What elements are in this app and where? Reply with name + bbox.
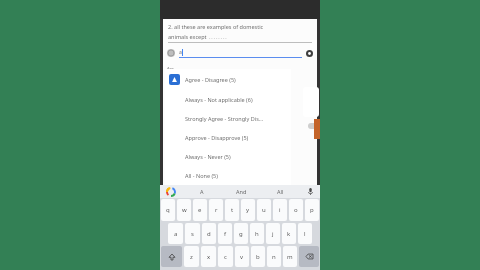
button[interactable]: Agree - Disagree (5) <box>165 69 291 89</box>
staticText: v <box>240 253 244 261</box>
button[interactable]: Approve - Disapprove (5) <box>165 128 291 147</box>
staticText: A <box>200 188 204 195</box>
button[interactable]: Option <box>167 80 174 87</box>
staticText: All - None (5) <box>185 172 218 179</box>
staticText: animals except <box>168 33 207 40</box>
button[interactable]: v <box>235 246 249 267</box>
staticText: f <box>224 230 227 238</box>
staticText: Agree - Disagree (5) <box>185 76 236 83</box>
staticText: Always - Never (5) <box>185 153 231 160</box>
button[interactable]: l <box>298 223 312 244</box>
staticText: o <box>294 206 298 214</box>
staticText: w <box>182 206 187 214</box>
staticText: n <box>272 253 276 261</box>
button[interactable]: Strongly Agree - Strongly Dis... <box>165 109 291 128</box>
button[interactable]: z <box>184 246 199 267</box>
button[interactable]: e <box>193 199 207 221</box>
staticText: 2. all these are examples of domestic <box>168 23 264 30</box>
button[interactable]: f <box>218 223 232 244</box>
staticText: c <box>224 253 227 261</box>
staticText: Approve - Disapprove (5) <box>185 134 249 141</box>
button[interactable]: Clear <box>306 50 313 57</box>
button[interactable]: All - None (5) <box>165 166 291 185</box>
staticText: p <box>310 206 314 214</box>
button[interactable]: p <box>305 199 319 221</box>
button[interactable]: o <box>289 199 303 221</box>
staticText: t <box>231 206 234 214</box>
staticText: e <box>198 206 202 214</box>
button[interactable]: w <box>177 199 191 221</box>
button[interactable]: Always - Not applicable (6) <box>165 89 291 109</box>
staticText: h <box>255 230 259 238</box>
button[interactable]: j <box>266 223 280 244</box>
button[interactable]: k <box>282 223 296 244</box>
staticText: j <box>272 230 274 238</box>
staticText: m <box>287 253 293 261</box>
button[interactable]: h <box>250 223 264 244</box>
button[interactable]: u <box>257 199 271 221</box>
staticText: - - - - - - - - <box>209 35 227 40</box>
button[interactable]: m <box>283 246 297 267</box>
button[interactable]: q <box>161 199 175 221</box>
staticText: d <box>207 230 211 238</box>
button[interactable]: Voice input <box>300 185 320 198</box>
button[interactable]: g <box>234 223 248 244</box>
button[interactable]: c <box>218 246 233 267</box>
button[interactable]: d <box>202 223 216 244</box>
staticText: y <box>246 206 250 214</box>
button[interactable]: Search <box>167 46 313 60</box>
button[interactable]: A <box>182 185 222 198</box>
button[interactable]: n <box>267 246 281 267</box>
staticText: Ans <box>167 66 174 71</box>
staticText: s <box>191 230 194 238</box>
staticText: b <box>256 253 260 261</box>
staticText: a <box>179 49 182 56</box>
staticText: k <box>287 230 291 238</box>
button[interactable]: Google <box>160 185 182 198</box>
staticText: u <box>262 206 266 214</box>
button[interactable]: b <box>251 246 265 267</box>
staticText: x <box>207 253 211 261</box>
staticText: g <box>239 230 243 238</box>
staticText: And <box>236 188 247 195</box>
staticText: z <box>190 253 193 261</box>
staticText: q <box>166 206 170 214</box>
staticText: All <box>277 188 284 195</box>
button[interactable]: And <box>222 185 261 198</box>
other: Search <box>167 49 175 57</box>
button[interactable]: Shift <box>161 246 182 267</box>
button[interactable]: All <box>261 185 300 198</box>
staticText: Always - Not applicable (6) <box>185 96 253 103</box>
button[interactable]: x <box>201 246 216 267</box>
button[interactable]: i <box>273 199 287 221</box>
button[interactable]: s <box>185 223 200 244</box>
button[interactable]: Always - Never (5) <box>165 147 291 166</box>
button[interactable]: r <box>209 199 223 221</box>
staticText: l <box>304 230 306 238</box>
button[interactable]: Backspace <box>299 246 319 267</box>
button[interactable]: t <box>225 199 239 221</box>
staticText: r <box>215 206 218 214</box>
staticText: i <box>279 206 281 214</box>
staticText: a <box>174 230 178 238</box>
staticText: Strongly Agree - Strongly Dis... <box>185 115 264 122</box>
button[interactable]: a <box>168 223 183 244</box>
button[interactable]: y <box>241 199 255 221</box>
